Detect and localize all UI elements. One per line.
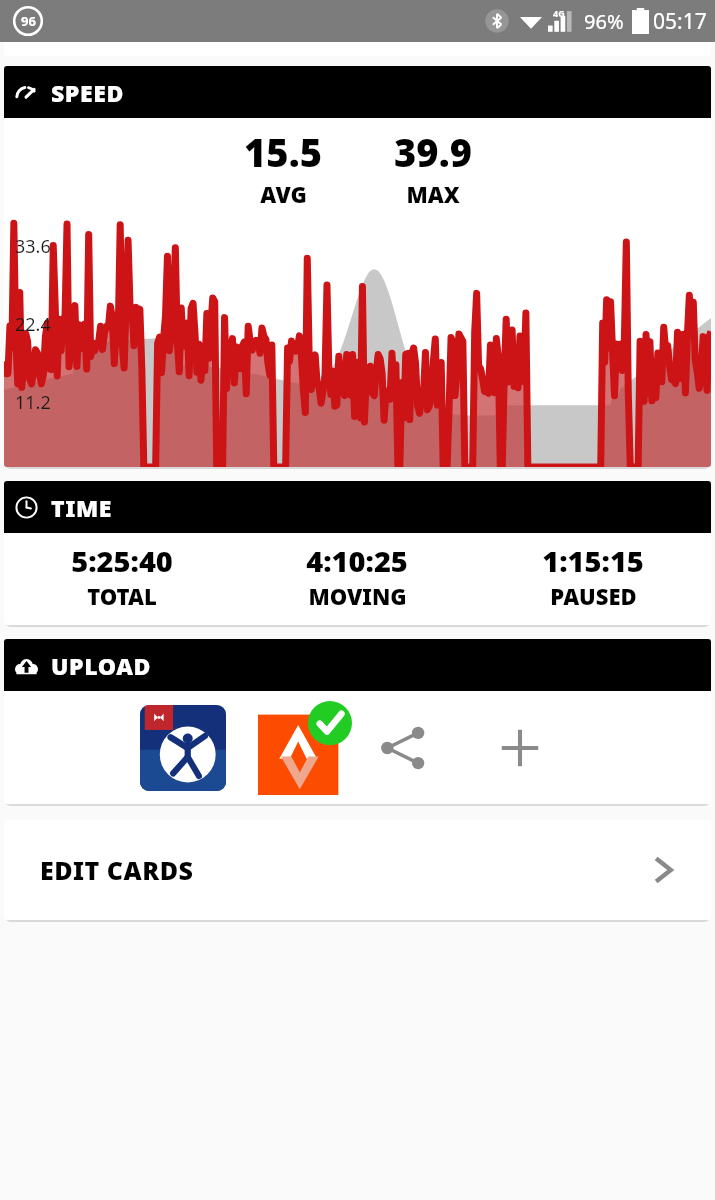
staticText: 15.5 bbox=[244, 126, 322, 178]
button[interactable]: UPLOAD bbox=[4, 639, 711, 691]
staticText: 39.9 bbox=[394, 126, 472, 178]
staticText: 11.2 bbox=[15, 390, 51, 415]
button[interactable]: Share bbox=[376, 721, 430, 775]
button[interactable]: Uploaded to Strava bbox=[258, 701, 352, 795]
staticText: PAUSED bbox=[550, 581, 637, 611]
staticText: 33.6 bbox=[15, 234, 51, 259]
button[interactable]: EDIT CARDS bbox=[4, 820, 711, 920]
staticText: MAX bbox=[406, 179, 460, 209]
staticText: TIME bbox=[51, 492, 112, 523]
staticText: UPLOAD bbox=[51, 650, 151, 681]
staticText: 4G bbox=[553, 7, 565, 19]
button[interactable]: SPEED bbox=[4, 66, 711, 118]
button[interactable]: Add service bbox=[496, 724, 544, 772]
staticText: AVG bbox=[260, 179, 307, 209]
button[interactable]: TIME bbox=[4, 481, 711, 533]
staticText: SPEED bbox=[51, 77, 124, 108]
staticText: 96 bbox=[21, 12, 36, 30]
staticText: 22.4 bbox=[15, 312, 51, 337]
staticText: TOTAL bbox=[87, 581, 157, 611]
staticText: 1:15:15 bbox=[542, 541, 644, 580]
staticText: EDIT CARDS bbox=[40, 853, 194, 887]
staticText: 5:25:40 bbox=[71, 541, 173, 580]
staticText: MOVING bbox=[308, 581, 407, 611]
staticText: 05:17 bbox=[653, 7, 707, 36]
button[interactable]: Upload to MapMyRun bbox=[140, 705, 226, 791]
staticText: 96% bbox=[584, 8, 624, 35]
staticText: 4:10:25 bbox=[306, 541, 408, 580]
